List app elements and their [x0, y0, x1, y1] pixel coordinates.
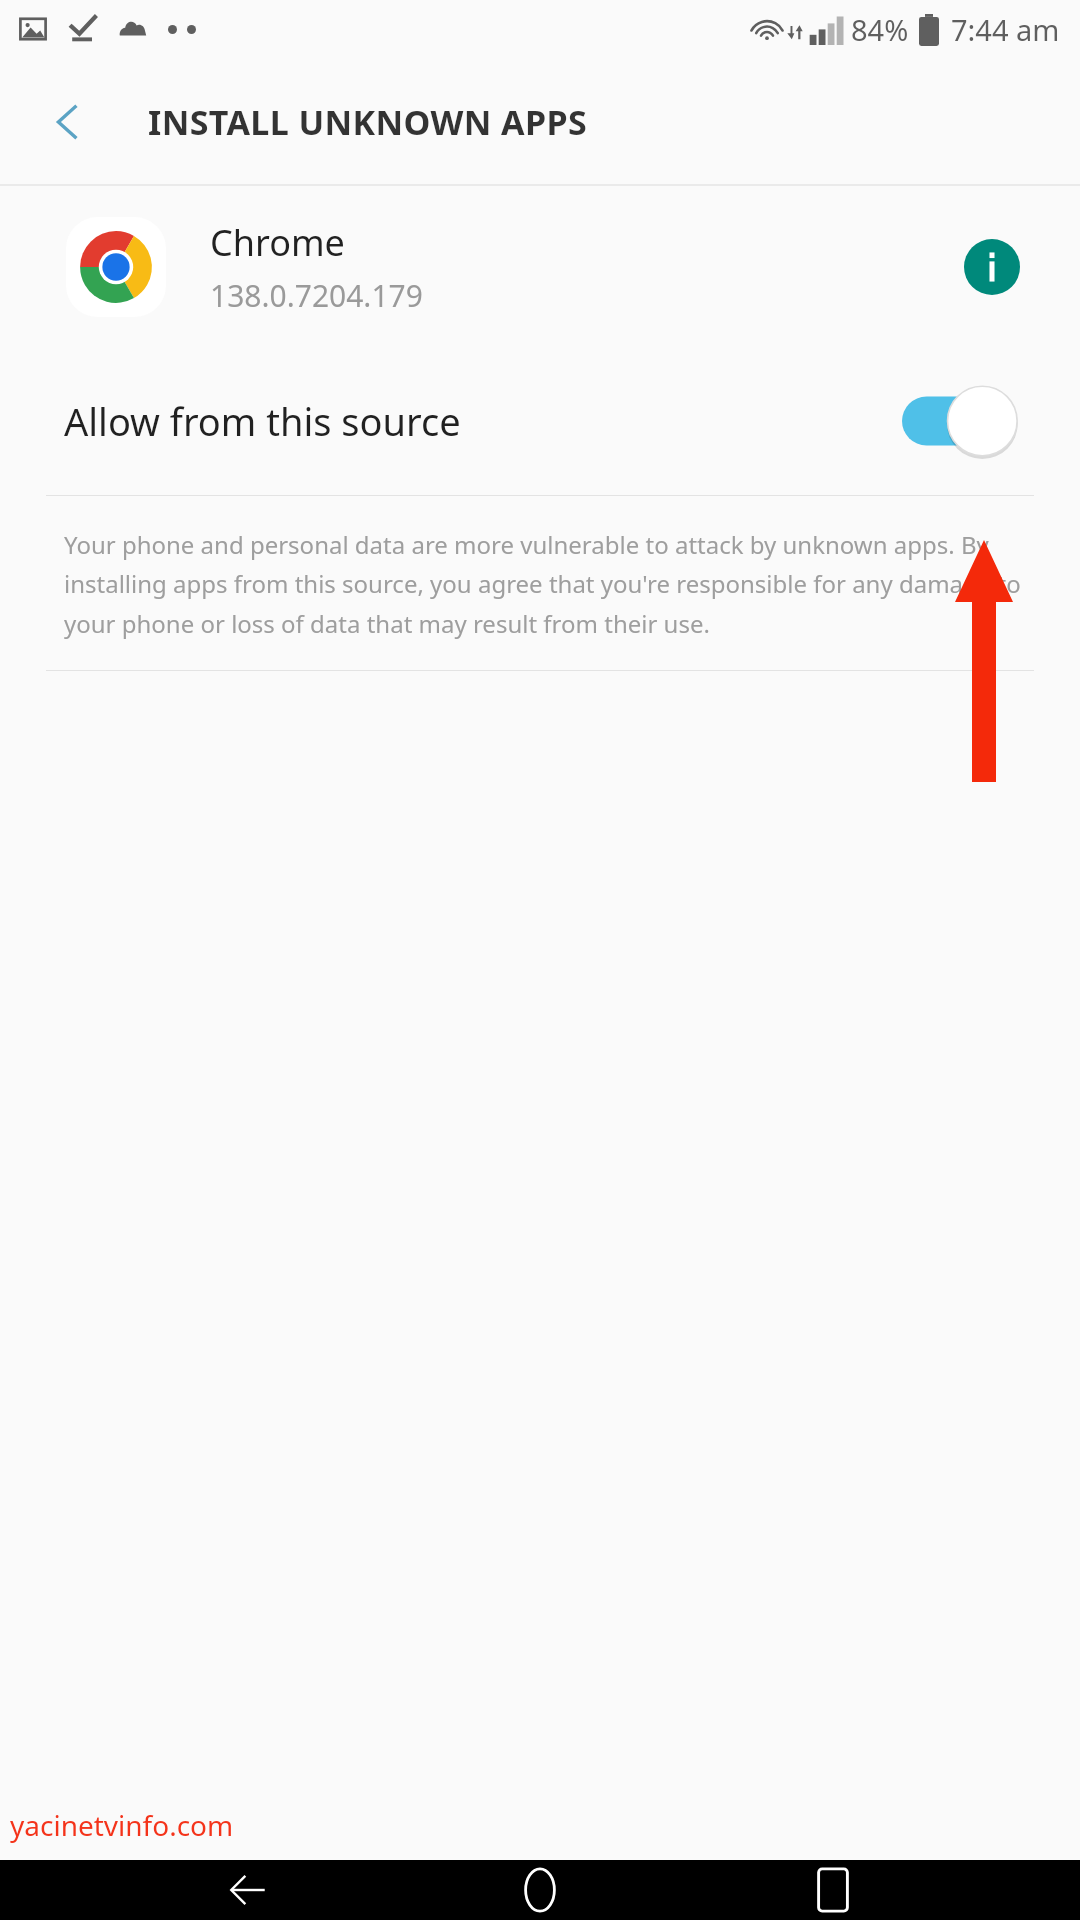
staticText: Allow from this source	[64, 395, 902, 447]
button[interactable]: App info	[960, 235, 1024, 299]
button[interactable]: Home	[495, 1860, 585, 1920]
staticText: 84%	[851, 10, 909, 49]
button[interactable]: Back	[38, 92, 98, 152]
button[interactable]: Allow from this source	[0, 347, 1080, 495]
staticText: Your phone and personal data are more vu…	[64, 528, 1024, 640]
button[interactable]: Allow from this source toggle	[902, 384, 1022, 458]
button[interactable]: Recent apps	[788, 1860, 878, 1920]
button[interactable]: Back	[203, 1860, 293, 1920]
button[interactable]: Chrome	[0, 187, 1080, 347]
staticText: yacinetvinfo.com	[10, 1806, 234, 1844]
staticText: INSTALL UNKNOWN APPS	[148, 99, 588, 145]
staticText: Chrome	[210, 218, 345, 267]
staticText: 138.0.7204.179	[210, 275, 423, 316]
staticText: 7:44 am	[951, 10, 1060, 49]
